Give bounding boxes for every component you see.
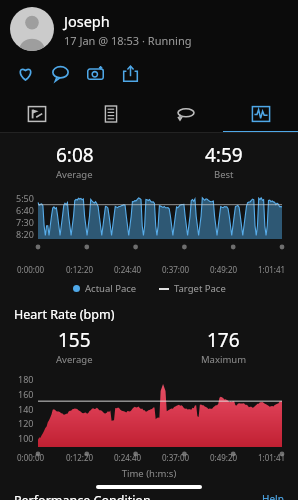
staticText: 4:59 [205,142,243,168]
staticText: 140 [18,403,34,415]
staticText: Heart Rate (bpm) [14,306,115,323]
staticText: Target Pace [174,282,226,295]
staticText: Time (h:m:s) [0,467,298,480]
staticText: 0:37:00 [162,452,190,463]
staticText: 0:49:20 [210,264,238,275]
staticText: 8:20 [16,228,34,240]
staticText: 1:01:41 [258,452,286,463]
staticText: Actual Pace [85,282,137,295]
button[interactable]: Repeat [148,95,223,133]
staticText: 176 [207,327,240,353]
staticText: 5:50 [16,192,34,204]
button[interactable]: Like [12,60,38,86]
button[interactable]: Map [0,95,74,133]
staticText: 7:30 [16,216,34,228]
button[interactable]: Add photo [82,60,108,86]
staticText: Average [56,353,93,366]
staticText: 155 [58,327,91,353]
staticText: 0:00:00 [17,264,45,275]
staticText: 6:08 [56,142,94,168]
staticText: 0:00:00 [17,452,45,463]
staticText: Average [56,168,93,181]
staticText: 100 [18,432,34,444]
button[interactable]: Charts [223,95,298,133]
button[interactable]: Laps [74,95,148,133]
staticText: 180 [18,373,34,385]
staticText: 0:37:00 [162,264,190,275]
staticText: 0:12:20 [66,452,94,463]
button[interactable]: Comment [47,60,73,86]
staticText: 0:12:20 [66,264,94,275]
staticText: Performance Condition [14,492,151,500]
staticText: Maximum [201,353,247,366]
staticText: 0:24:40 [114,452,142,463]
staticText: 0:24:40 [114,264,142,275]
staticText: 160 [18,388,34,400]
button[interactable]: Share [117,60,143,86]
staticText: Help [262,492,284,500]
staticText: 0:49:20 [210,452,238,463]
staticText: Joseph [64,11,110,31]
staticText: 17 Jan @ 18:53 · Running [64,33,192,48]
staticText: 1:01:41 [258,264,286,275]
staticText: Best [214,168,234,181]
staticText: 6:40 [16,204,34,216]
staticText: 120 [18,417,34,429]
